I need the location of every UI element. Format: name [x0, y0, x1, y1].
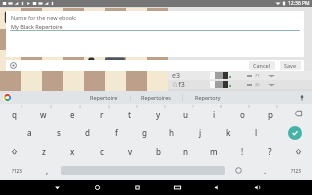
button[interactable]: v	[116, 142, 144, 161]
staticText: s	[57, 127, 61, 138]
button[interactable]: Home	[91, 180, 103, 195]
button[interactable]: Emoji	[225, 161, 252, 180]
button[interactable]: Repertory	[182, 91, 234, 104]
staticText: 4	[108, 105, 110, 109]
staticText: b	[156, 146, 161, 157]
button[interactable]: Enter	[277, 123, 312, 142]
button[interactable]: 0	[256, 104, 284, 123]
staticText: k	[226, 127, 231, 138]
staticText: !	[241, 146, 244, 157]
button[interactable]: ,	[34, 161, 61, 180]
button[interactable]: 3	[58, 104, 87, 123]
button[interactable]: c	[87, 142, 116, 161]
staticText: Name for the new ebook:	[11, 14, 77, 21]
button[interactable]: 8	[200, 104, 228, 123]
other: Options	[10, 62, 17, 69]
staticText: i	[213, 109, 216, 120]
staticText: l	[255, 127, 258, 138]
staticText: z	[42, 146, 46, 157]
button[interactable]: 4	[87, 104, 116, 123]
button[interactable]: s	[44, 123, 73, 142]
button[interactable]: Repertoire	[78, 91, 130, 104]
button[interactable]: a	[15, 123, 44, 142]
button[interactable]: Volume down	[211, 180, 223, 195]
button[interactable]: l	[242, 123, 270, 142]
staticText: 12:36 PM	[288, 0, 310, 7]
staticText: o	[240, 109, 245, 120]
button[interactable]: ?	[256, 142, 284, 161]
button[interactable]: Save	[280, 61, 301, 70]
button[interactable]: d	[73, 123, 102, 142]
button[interactable]: Space	[61, 161, 225, 180]
staticText: m	[210, 146, 218, 157]
button[interactable]: 2	[29, 104, 58, 123]
button[interactable]: h	[158, 123, 186, 142]
staticText: 3	[79, 105, 81, 109]
button[interactable]: 7	[172, 104, 200, 123]
staticText: e3	[172, 71, 180, 80]
button[interactable]: m	[200, 142, 228, 161]
staticText: 77	[255, 73, 260, 78]
staticText: n	[183, 146, 189, 157]
button[interactable]: 6	[144, 104, 172, 123]
staticText: 6	[164, 105, 166, 109]
button[interactable]: Back	[51, 180, 63, 195]
button[interactable]: Cancel	[249, 61, 275, 70]
staticText: h	[169, 127, 175, 138]
staticText: ?123	[291, 168, 301, 174]
button[interactable]: n	[172, 142, 200, 161]
button[interactable]: b	[144, 142, 172, 161]
staticText: .	[264, 165, 267, 176]
button[interactable]: e3	[168, 71, 312, 80]
staticText: c	[100, 146, 104, 157]
button[interactable]: g	[130, 123, 158, 142]
staticText: w	[40, 109, 47, 120]
button[interactable]: 5	[116, 104, 144, 123]
staticText: 2	[50, 105, 52, 109]
button[interactable]: 9	[228, 104, 256, 123]
button[interactable]: z	[29, 142, 58, 161]
staticText: ,	[46, 165, 49, 176]
button[interactable]: j	[186, 123, 214, 142]
button[interactable]: Repertoires	[130, 91, 182, 104]
staticText: 8	[220, 105, 222, 109]
button[interactable]: !	[228, 142, 256, 161]
button[interactable]: Recents	[131, 180, 143, 195]
button[interactable]: .	[252, 161, 279, 180]
staticText: p	[268, 109, 273, 120]
button[interactable]: Backspace	[284, 104, 312, 123]
staticText: 9	[248, 105, 250, 109]
staticText: j	[199, 127, 202, 138]
staticText: v	[128, 146, 133, 157]
staticText: x	[70, 146, 75, 157]
button[interactable]: ?123	[0, 161, 34, 180]
button[interactable]: ?123	[279, 161, 312, 180]
button[interactable]: Shift	[284, 142, 312, 161]
button[interactable]: Volume up	[251, 180, 263, 195]
staticText: ?	[268, 146, 272, 157]
button[interactable]: k	[214, 123, 242, 142]
staticText: 7	[192, 105, 194, 109]
button[interactable]: x	[58, 142, 87, 161]
staticText: e	[70, 109, 75, 120]
button[interactable]: f	[102, 123, 130, 142]
button[interactable]: Voice input	[296, 92, 308, 104]
button[interactable]: ♘f3	[168, 80, 312, 89]
staticText: Cancel	[253, 62, 271, 69]
button[interactable]: Hide keyboard	[171, 180, 183, 195]
staticText: Repertoire	[90, 94, 118, 101]
button[interactable]: Google	[2, 92, 13, 103]
staticText: 5	[136, 105, 138, 109]
staticText: 1	[21, 105, 23, 109]
staticText: 0	[276, 105, 278, 109]
staticText: r	[100, 109, 104, 120]
staticText: Repertory	[195, 94, 221, 101]
button[interactable]: 1	[0, 104, 29, 123]
button[interactable]: Shift	[0, 142, 29, 161]
staticText: t	[128, 109, 132, 120]
staticText: Save	[284, 62, 297, 69]
staticText: q	[12, 109, 17, 120]
staticText: f	[115, 127, 118, 138]
staticText: d	[85, 127, 90, 138]
staticText: ♘f3	[172, 80, 185, 89]
